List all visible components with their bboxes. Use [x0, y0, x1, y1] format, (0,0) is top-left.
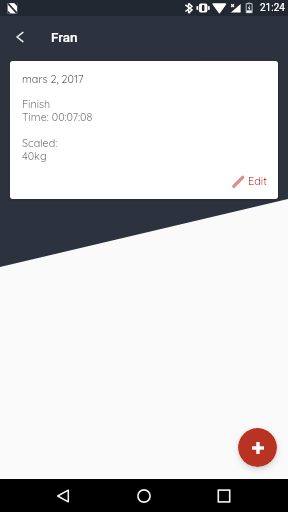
staticText: Finish Time: 00:07:08: [22, 97, 93, 123]
button[interactable]: Back: [41, 479, 85, 512]
staticText: 21:24: [260, 2, 285, 14]
button[interactable]: Navigate up: [0, 17, 39, 56]
staticText: Edit: [248, 174, 267, 188]
button[interactable]: Add workout result: [238, 428, 277, 467]
button[interactable]: Home: [122, 479, 166, 512]
staticText: Fran: [51, 30, 78, 46]
button[interactable]: Recent apps: [202, 479, 246, 512]
staticText: mars 2, 2017: [22, 72, 84, 86]
button[interactable]: Edit: [232, 171, 272, 191]
staticText: Scaled: 40kg: [22, 136, 58, 162]
button[interactable]: mars 2, 2017: [10, 61, 278, 199]
